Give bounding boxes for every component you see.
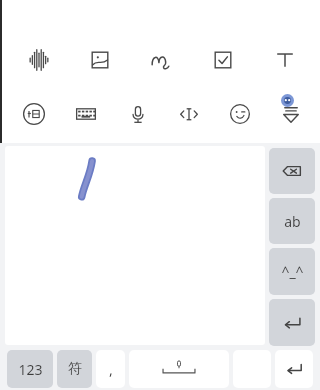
button[interactable]: Comma bbox=[96, 350, 125, 388]
staticText: 123 bbox=[18, 360, 43, 379]
button[interactable]: Checklist bbox=[192, 40, 254, 80]
button[interactable]: Language bbox=[8, 94, 60, 134]
button[interactable]: Hide keyboard bbox=[265, 94, 316, 134]
button[interactable]: Space bbox=[129, 350, 229, 388]
button[interactable]: Kaomoji bbox=[269, 248, 315, 295]
button[interactable]: 123 bbox=[7, 350, 53, 388]
staticText: ^_^ bbox=[281, 262, 304, 281]
button[interactable]: Handwriting bbox=[130, 40, 192, 80]
button[interactable]: Voice bbox=[8, 40, 69, 80]
button[interactable]: Handwriting area bbox=[5, 146, 265, 345]
button[interactable]: Emoji bbox=[214, 94, 265, 134]
button[interactable]: Return bbox=[275, 350, 313, 388]
button[interactable]: Enter bbox=[269, 299, 315, 346]
button[interactable]: Insert image bbox=[69, 40, 130, 80]
button[interactable]: Move cursor bbox=[163, 94, 214, 134]
button[interactable]: Text style bbox=[254, 40, 316, 80]
staticText: 符 bbox=[68, 360, 82, 378]
staticText: , bbox=[109, 360, 113, 379]
button[interactable]: Keyboard bbox=[60, 94, 112, 134]
button[interactable]: Symbols bbox=[57, 350, 92, 388]
button[interactable]: Voice input bbox=[112, 94, 163, 134]
button[interactable]: Letters bbox=[269, 198, 315, 244]
button[interactable]: Backspace bbox=[269, 148, 315, 194]
staticText: ab bbox=[284, 212, 301, 231]
